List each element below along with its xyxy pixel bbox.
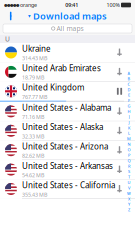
- button[interactable]: United States - Arkansas: [0, 160, 135, 179]
- staticText: L: [128, 131, 130, 136]
- button[interactable]: United Kingdom: [0, 82, 135, 102]
- staticText: V: [128, 185, 130, 191]
- staticText: orange: [19, 1, 37, 9]
- staticText: E: [128, 92, 130, 98]
- button[interactable]: United States - Alabama: [0, 102, 135, 121]
- staticText: 71.16 MB: [22, 113, 44, 120]
- staticText: United States - Alaska: [22, 122, 103, 132]
- button[interactable]: United States - Alaska: [0, 121, 135, 141]
- button[interactable]: United Arab Emirates: [0, 62, 135, 82]
- staticText: D: [127, 87, 130, 92]
- staticText: ▾: [28, 13, 31, 19]
- staticText: Q: [127, 158, 130, 163]
- staticText: United Arab Emirates: [22, 63, 101, 73]
- button[interactable]: Back: [0, 8, 14, 23]
- staticText: 32.33 MB: [22, 133, 44, 140]
- staticText: W: [127, 191, 131, 196]
- staticText: M: [127, 136, 131, 141]
- button[interactable]: United States - California: [0, 179, 135, 199]
- staticText: United Kingdom: [22, 82, 84, 93]
- staticText: 355.43 MB: [22, 191, 47, 198]
- staticText: United States - Alabama: [22, 102, 111, 113]
- staticText: O: [127, 147, 130, 152]
- staticText: Download maps: [33, 10, 107, 22]
- staticText: United States - California: [22, 180, 115, 190]
- staticText: Ukraine: [22, 43, 51, 54]
- staticText: B: [127, 76, 130, 81]
- staticText: 09:41: [65, 1, 78, 9]
- staticText: 100%: [106, 1, 119, 9]
- staticText: F: [128, 98, 130, 103]
- staticText: U: [127, 180, 130, 185]
- staticText: T: [128, 174, 130, 180]
- staticText: 18.79 MB: [22, 74, 44, 81]
- staticText: Z: [128, 207, 130, 212]
- staticText: I: [128, 114, 129, 120]
- staticText: 314.43 MB: [22, 54, 47, 62]
- staticText: 767.77 MB: [22, 93, 47, 100]
- staticText: 54.62 MB: [22, 172, 44, 179]
- staticText: ●●●●●: [4, 3, 19, 7]
- staticText: G: [127, 103, 130, 109]
- staticText: S: [128, 169, 130, 174]
- staticText: R: [128, 163, 130, 169]
- button[interactable]: Ukraine: [0, 43, 135, 62]
- staticText: C: [127, 81, 130, 87]
- staticText: P: [128, 152, 130, 158]
- staticText: 82.62 MB: [22, 152, 44, 159]
- staticText: United States - Arkansas: [22, 160, 113, 171]
- staticText: Y: [128, 202, 130, 207]
- staticText: H: [127, 109, 130, 114]
- staticText: United States - Arizona: [22, 141, 108, 152]
- staticText: K: [128, 125, 130, 130]
- staticText: A: [127, 71, 130, 76]
- staticText: N: [127, 142, 130, 147]
- button[interactable]: United States - Arizona: [0, 141, 135, 160]
- staticText: U: [5, 35, 10, 43]
- staticText: J: [128, 120, 129, 125]
- staticText: All maps: [56, 24, 83, 33]
- staticText: X: [128, 196, 130, 201]
